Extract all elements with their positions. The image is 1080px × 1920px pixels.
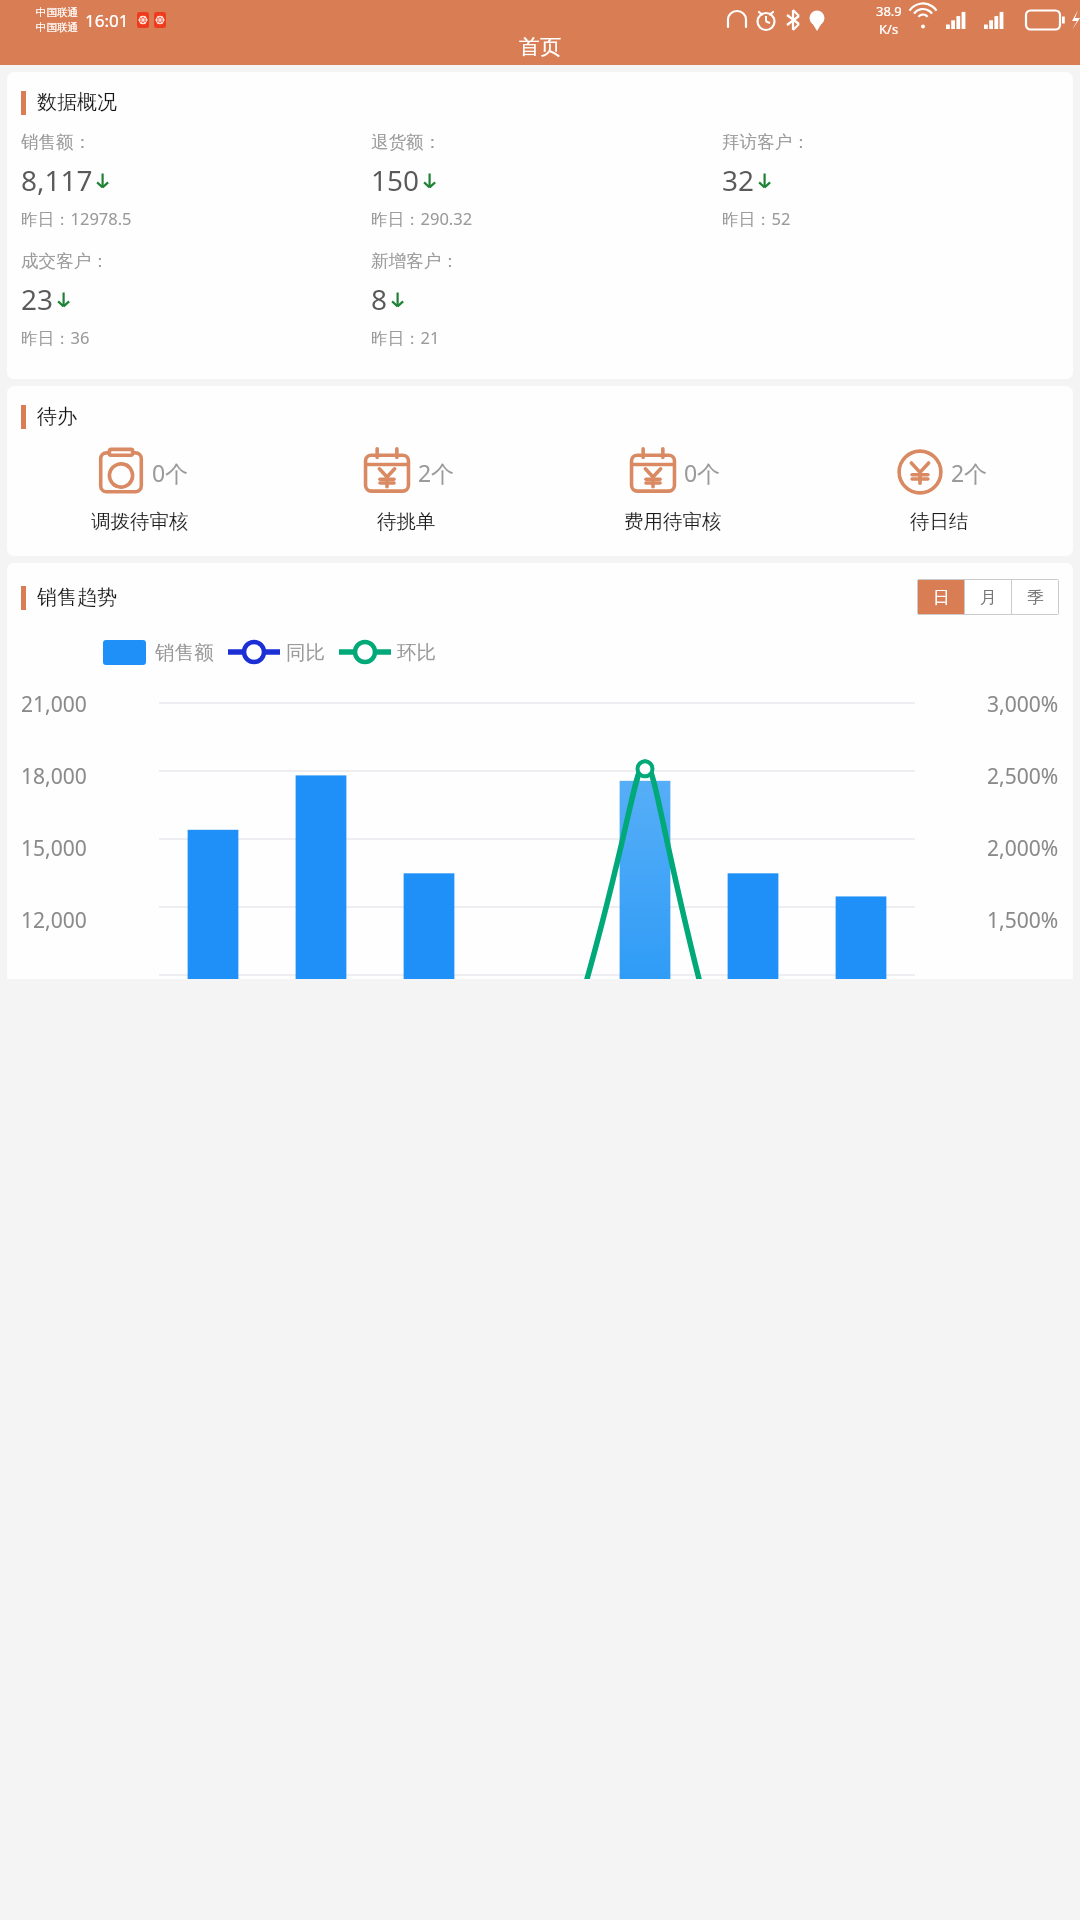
staticText: 新增客户： xyxy=(371,250,459,272)
other: 待挑单 xyxy=(358,443,416,501)
staticText: 销售趋势 xyxy=(37,585,117,610)
staticText: 首页 xyxy=(519,34,561,60)
other: 调拨待审核 xyxy=(92,443,150,501)
staticText: 数据概况 xyxy=(37,90,117,115)
button[interactable]: 待挑单 xyxy=(273,443,539,534)
staticText: 环比 xyxy=(397,640,436,665)
button[interactable]: 月 xyxy=(965,580,1011,614)
staticText: 月 xyxy=(980,587,997,608)
staticText: 0个 xyxy=(684,457,721,488)
staticText: 调拨待审核 xyxy=(91,509,189,534)
button[interactable]: 退货额： xyxy=(371,131,722,230)
staticText: 同比 xyxy=(286,640,325,665)
staticText: 日 xyxy=(933,587,950,608)
other: 待日结 xyxy=(891,443,949,501)
staticText: 中国联通 xyxy=(36,21,78,34)
staticText: 待挑单 xyxy=(377,509,436,534)
button[interactable]: 销售额： xyxy=(21,131,371,230)
staticText: 2,000% xyxy=(987,834,1059,863)
button[interactable]: 日 xyxy=(918,580,964,614)
button[interactable]: 待日结 xyxy=(806,443,1073,534)
button[interactable]: 新增客户： xyxy=(371,250,722,349)
button[interactable]: 调拨待审核 xyxy=(7,443,273,534)
staticText: 16:01 xyxy=(85,9,129,32)
staticText: 销售额 xyxy=(155,640,214,665)
staticText: 32 xyxy=(722,161,755,199)
staticText: 待办 xyxy=(37,404,77,429)
button[interactable]: 拜访客户： xyxy=(722,131,1073,230)
staticText: 12,000 xyxy=(21,906,87,935)
staticText: 昨日：52 xyxy=(722,207,791,230)
other: 费用待审核 xyxy=(624,443,682,501)
staticText: 昨日：21 xyxy=(371,326,440,349)
staticText: 中国联通 xyxy=(36,6,78,19)
staticText: 季 xyxy=(1027,587,1044,608)
staticText: 8 xyxy=(371,280,388,318)
staticText: 2,500% xyxy=(987,762,1059,791)
staticText: 昨日：36 xyxy=(21,326,90,349)
staticText: 38.9 xyxy=(876,2,902,20)
staticText: K/s xyxy=(879,20,899,38)
staticText: 150 xyxy=(371,161,420,199)
staticText: 昨日：290.32 xyxy=(371,207,473,230)
staticText: 3,000% xyxy=(987,690,1059,719)
staticText: 2个 xyxy=(951,457,988,488)
staticText: 21,000 xyxy=(21,690,87,719)
staticText: 昨日：12978.5 xyxy=(21,207,132,230)
staticText: 2个 xyxy=(418,457,455,488)
staticText: 退货额： xyxy=(371,131,441,153)
staticText: 15,000 xyxy=(21,834,87,863)
staticText: 0个 xyxy=(152,457,189,488)
staticText: 8,117 xyxy=(21,161,93,199)
staticText: 成交客户： xyxy=(21,250,109,272)
staticText: 1,500% xyxy=(987,906,1059,935)
button[interactable]: 费用待审核 xyxy=(539,443,806,534)
staticText: 18,000 xyxy=(21,762,87,791)
staticText: 待日结 xyxy=(910,509,969,534)
staticText: 销售额： xyxy=(21,131,91,153)
staticText: 23 xyxy=(21,280,54,318)
button[interactable]: 成交客户： xyxy=(21,250,371,349)
staticText: 费用待审核 xyxy=(624,509,722,534)
button[interactable]: 季 xyxy=(1012,580,1058,614)
staticText: 拜访客户： xyxy=(722,131,810,153)
